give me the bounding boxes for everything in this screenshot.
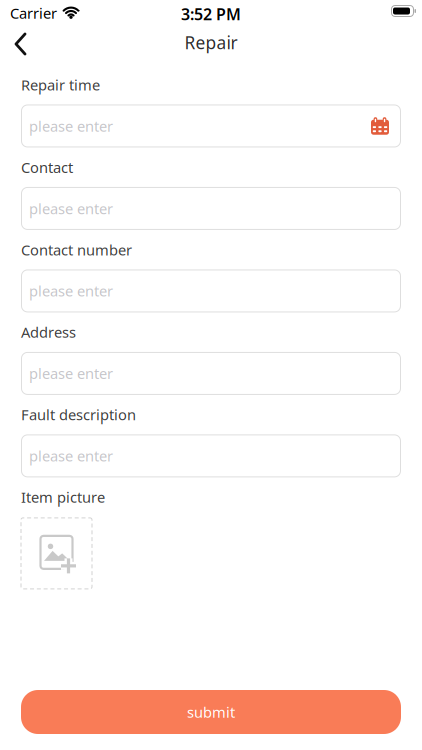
- button[interactable]: submit: [21, 690, 401, 734]
- staticText: Contact: [21, 157, 73, 177]
- button[interactable]: Repair time: [21, 104, 401, 147]
- button[interactable]: Add picture: [21, 518, 92, 589]
- staticText: please enter: [29, 116, 113, 136]
- button[interactable]: Contact: [21, 187, 401, 230]
- staticText: submit: [187, 702, 235, 722]
- staticText: please enter: [29, 364, 113, 383]
- staticText: please enter: [29, 446, 113, 466]
- staticText: Carrier: [10, 3, 57, 23]
- staticText: Address: [21, 322, 76, 342]
- staticText: Item picture: [21, 487, 105, 507]
- button[interactable]: Contact number: [21, 269, 401, 312]
- staticText: Repair time: [21, 75, 100, 94]
- staticText: 3:52 PM: [181, 3, 241, 25]
- staticText: please enter: [29, 281, 113, 301]
- staticText: Fault description: [21, 405, 136, 424]
- button[interactable]: Back: [0, 27, 39, 61]
- button[interactable]: Address: [21, 352, 401, 395]
- button[interactable]: Fault description: [21, 434, 401, 477]
- staticText: please enter: [29, 199, 113, 218]
- staticText: Repair: [184, 31, 237, 54]
- staticText: Contact number: [21, 240, 132, 259]
